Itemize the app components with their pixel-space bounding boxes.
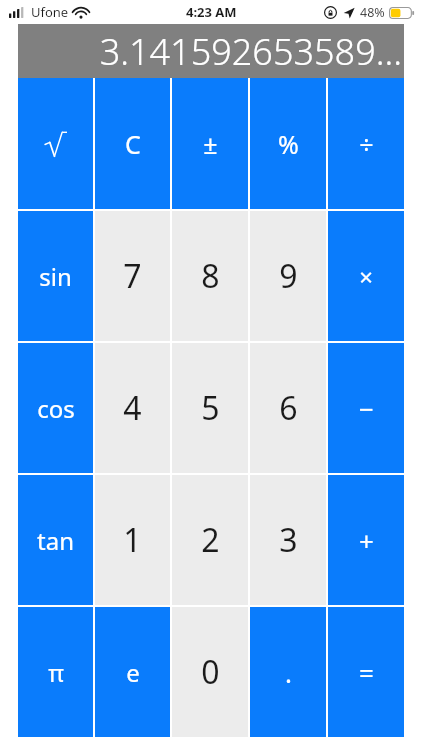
button[interactable]: −	[328, 343, 404, 473]
staticText: ×	[359, 260, 373, 293]
staticText: 1	[123, 518, 142, 562]
button[interactable]: 4	[95, 343, 170, 473]
button[interactable]: 6	[250, 343, 326, 473]
staticText: 3.141592653589…	[99, 27, 402, 76]
staticText: cos	[37, 392, 75, 425]
staticText: 9	[279, 254, 298, 298]
staticText: 6	[279, 386, 298, 430]
staticText: .	[285, 655, 292, 690]
staticText: 4	[123, 386, 142, 430]
button[interactable]: C	[95, 78, 170, 209]
button[interactable]: 8	[172, 211, 248, 341]
button[interactable]: ±	[172, 78, 248, 209]
button[interactable]: sin	[18, 211, 93, 341]
staticText: 0	[201, 650, 220, 694]
staticText: +	[359, 523, 374, 558]
staticText: 5	[201, 386, 220, 430]
button[interactable]: 2	[172, 475, 248, 605]
button[interactable]: +	[328, 475, 404, 605]
button[interactable]: π	[18, 607, 93, 737]
staticText: π	[48, 656, 64, 689]
staticText: Ufone	[31, 3, 69, 21]
staticText: e	[126, 656, 140, 689]
staticText: 8	[201, 254, 220, 298]
staticText: tan	[37, 524, 74, 557]
button[interactable]: 1	[95, 475, 170, 605]
staticText: =	[359, 655, 374, 690]
button[interactable]: tan	[18, 475, 93, 605]
button[interactable]: cos	[18, 343, 93, 473]
button[interactable]: %	[250, 78, 326, 209]
staticText: sin	[39, 260, 72, 293]
button[interactable]: 5	[172, 343, 248, 473]
button[interactable]: =	[328, 607, 404, 737]
button[interactable]: 9	[250, 211, 326, 341]
button[interactable]: .	[250, 607, 326, 737]
button[interactable]: e	[95, 607, 170, 737]
staticText: 2	[201, 518, 220, 562]
staticText: 7	[123, 254, 142, 298]
button[interactable]: 7	[95, 211, 170, 341]
button[interactable]: 0	[172, 607, 248, 737]
staticText: ±	[203, 127, 218, 161]
staticText: ÷	[359, 127, 374, 161]
button[interactable]: Square root	[18, 78, 93, 209]
staticText: 3	[279, 518, 298, 562]
staticText: 4:23 AM	[186, 3, 237, 21]
button[interactable]: 3	[250, 475, 326, 605]
button[interactable]: ÷	[328, 78, 404, 209]
staticText: 48%	[360, 4, 385, 21]
button[interactable]: ×	[328, 211, 404, 341]
staticText: −	[359, 391, 374, 426]
staticText: C	[125, 127, 141, 161]
staticText: %	[278, 127, 299, 161]
